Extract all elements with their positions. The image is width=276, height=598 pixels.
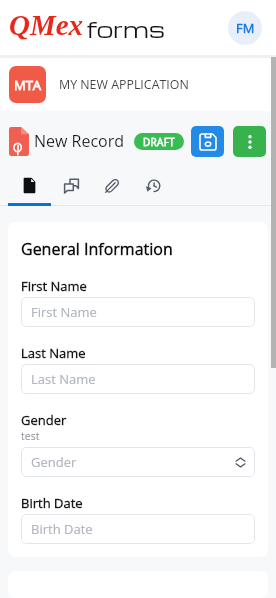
button[interactable]: Details — [8, 167, 51, 203]
staticText: MY NEW APPLICATION — [59, 76, 189, 93]
button[interactable]: DRAFT — [134, 133, 184, 150]
button[interactable]: Last Name — [21, 364, 255, 394]
button[interactable]: MTA — [9, 58, 276, 111]
staticText: MTA — [14, 76, 42, 94]
staticText: First Name — [31, 303, 97, 321]
staticText: test — [21, 429, 40, 443]
staticText: DRAFT — [143, 135, 175, 149]
staticText: Birth Date — [21, 494, 83, 512]
staticText: FM — [236, 19, 255, 37]
staticText: Gender — [21, 411, 67, 429]
button[interactable]: History — [133, 167, 174, 203]
staticText: Last Name — [31, 370, 96, 388]
button[interactable]: Account — [228, 11, 262, 45]
button[interactable]: More options — [233, 126, 266, 157]
staticText: Birth Date — [31, 520, 93, 538]
staticText: General Information — [21, 238, 173, 260]
button[interactable]: Attachments — [92, 167, 133, 203]
staticText: Gender — [31, 453, 77, 471]
button[interactable]: Gender — [21, 447, 255, 477]
staticText: forms — [86, 14, 166, 44]
staticText: First Name — [21, 277, 87, 295]
staticText: New Record — [34, 130, 125, 152]
staticText: Last Name — [21, 344, 86, 362]
staticText: QMex — [9, 9, 84, 41]
button[interactable]: Birth Date — [21, 514, 255, 544]
button[interactable]: First Name — [21, 297, 255, 327]
button[interactable]: Save — [191, 126, 224, 157]
button[interactable]: Comments — [51, 167, 92, 203]
